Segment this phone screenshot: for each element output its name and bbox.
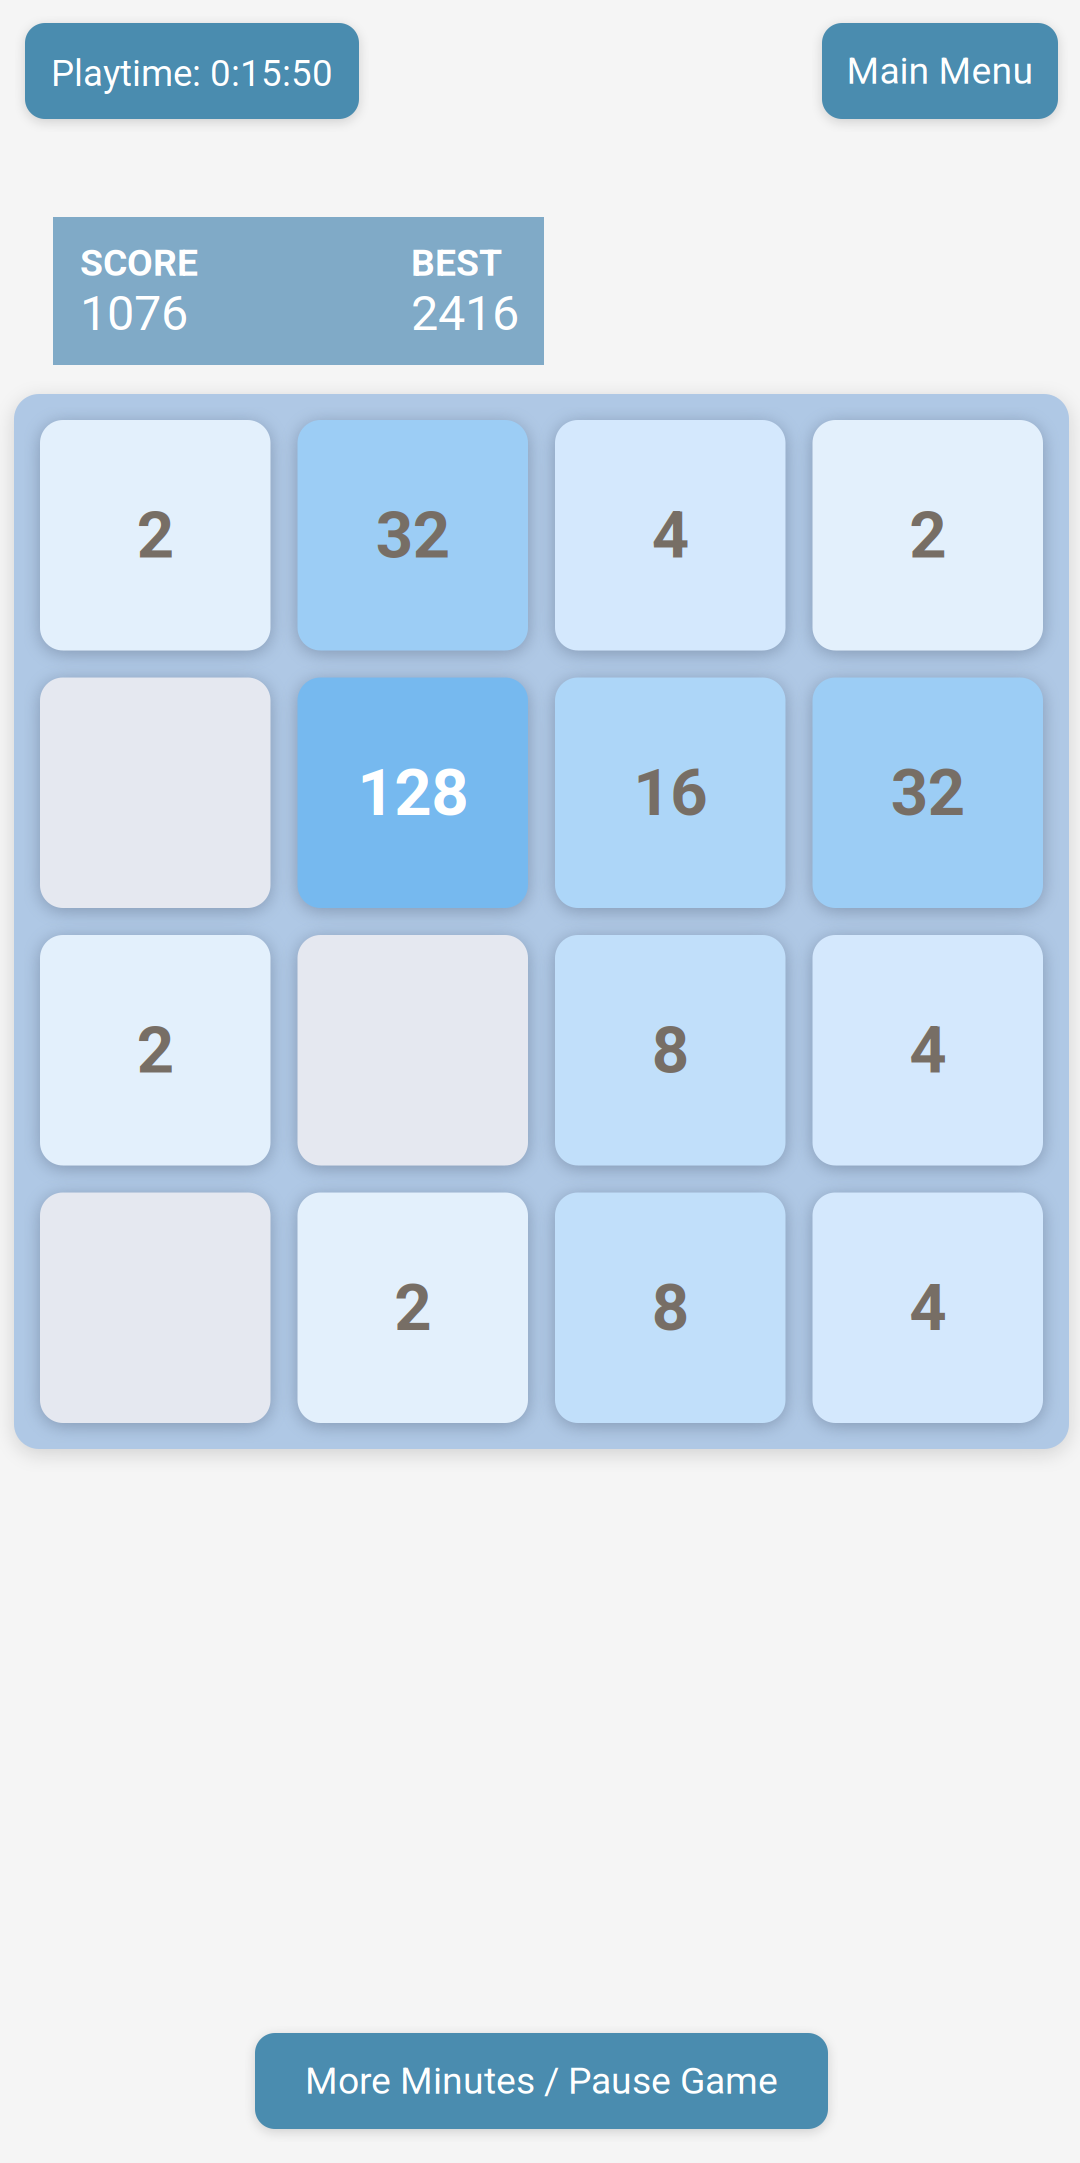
staticText: BEST [411, 241, 502, 285]
button[interactable]: Main Menu [822, 23, 1058, 119]
staticText: 1076 [80, 285, 188, 342]
staticText: 2416 [411, 285, 519, 342]
staticText: 32 [376, 497, 450, 574]
button[interactable]: Playtime: 0:15:50 [25, 23, 359, 119]
staticText: SCORE [80, 241, 198, 285]
staticText: Main Menu [846, 49, 1033, 93]
staticText: 2 [909, 497, 946, 574]
staticText: 2 [137, 497, 174, 574]
staticText: 2 [137, 1012, 174, 1089]
staticText: 2 [394, 1269, 431, 1346]
staticText: 4 [909, 1012, 946, 1089]
staticText: 8 [652, 1269, 689, 1346]
staticText: 16 [633, 754, 707, 831]
staticText: Playtime: 0:15:50 [51, 52, 333, 95]
staticText: More Minutes / Pause Game [305, 2059, 778, 2103]
staticText: 4 [909, 1269, 946, 1346]
staticText: 128 [357, 754, 468, 831]
staticText: 8 [652, 1012, 689, 1089]
button[interactable]: More Minutes / Pause Game [255, 2033, 828, 2129]
staticText: 4 [652, 497, 689, 574]
staticText: 32 [891, 754, 965, 831]
